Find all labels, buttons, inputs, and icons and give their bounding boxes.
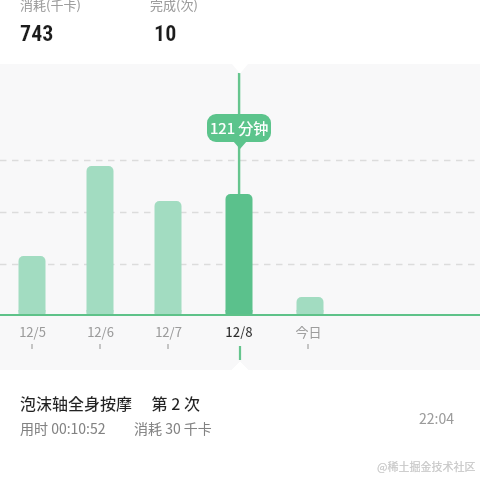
staticText: 22:04	[419, 408, 454, 428]
staticText: 消耗 30 千卡	[134, 418, 212, 438]
button[interactable]: 12/6	[72, 322, 128, 341]
staticText: 12/6	[87, 322, 114, 341]
staticText: 泡沫轴全身按摩 第 2 次	[20, 391, 200, 414]
button[interactable]: 12/8	[211, 322, 267, 341]
button[interactable]: 121 分钟	[207, 114, 271, 142]
staticText: 12/7	[155, 322, 182, 341]
staticText: @稀土掘金技术社区	[377, 458, 476, 474]
staticText: 消耗(千卡)	[20, 0, 81, 14]
staticText: 完成(次)	[150, 0, 198, 14]
button[interactable]: 12/7	[140, 322, 196, 341]
staticText: 121 分钟	[210, 117, 269, 139]
staticText: 743	[20, 21, 54, 47]
staticText: 今日	[295, 322, 322, 341]
staticText: 用时 00:10:52	[20, 418, 106, 438]
button[interactable]: 今日	[280, 322, 336, 341]
button[interactable]: 泡沫轴全身按摩 第 2 次	[0, 375, 480, 450]
staticText: 12/8	[225, 322, 253, 341]
button[interactable]: 12/5	[4, 322, 60, 341]
staticText: 10	[154, 21, 177, 47]
staticText: 12/5	[19, 322, 46, 341]
